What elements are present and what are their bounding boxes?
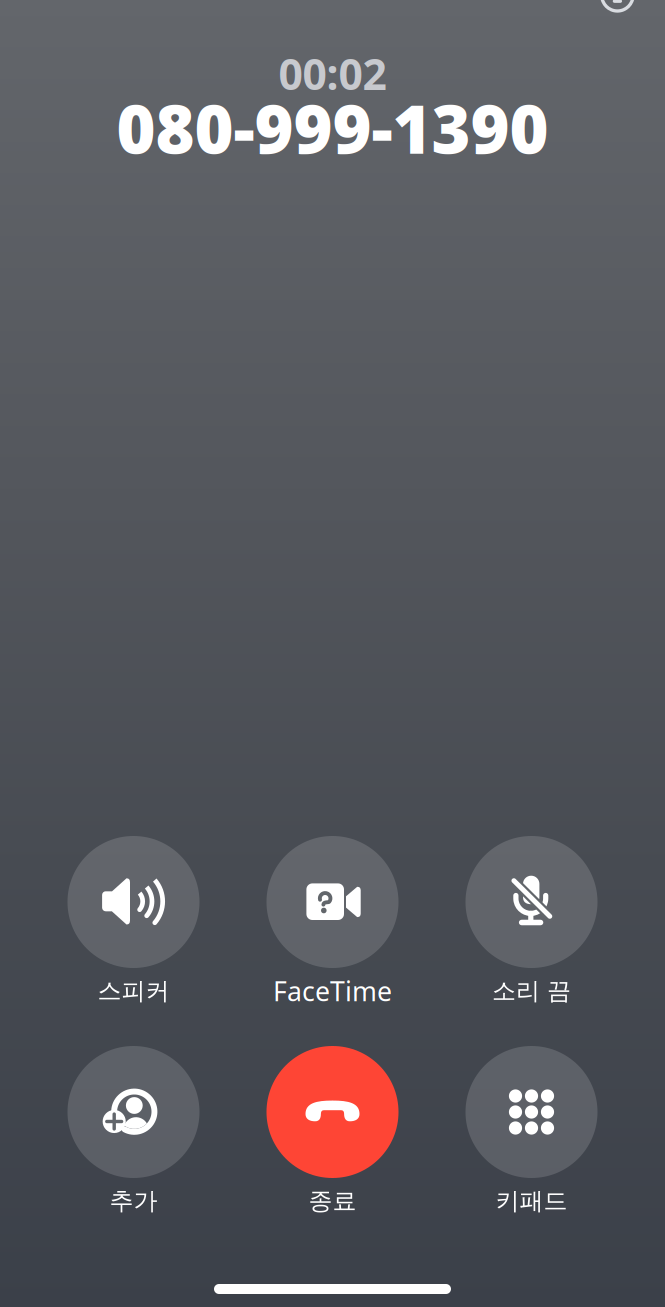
button[interactable]: 키패드 bbox=[465, 1046, 597, 1216]
staticText: 00:02 bbox=[278, 45, 386, 102]
button[interactable]: Contact info bbox=[600, 0, 634, 12]
button[interactable]: 스피커 bbox=[67, 836, 199, 1006]
staticText: 080-999-1390 bbox=[116, 84, 548, 172]
button[interactable]: FaceTime bbox=[266, 836, 398, 1006]
button[interactable]: 소리 끔 bbox=[465, 836, 597, 1006]
staticText: 추가 bbox=[109, 1186, 157, 1216]
button[interactable]: 종료 bbox=[266, 1046, 398, 1216]
staticText: 스피커 bbox=[97, 976, 169, 1006]
staticText: 소리 끔 bbox=[492, 976, 571, 1006]
staticText: 종료 bbox=[308, 1186, 356, 1216]
staticText: FaceTime bbox=[273, 973, 392, 1009]
button[interactable]: 추가 bbox=[67, 1046, 199, 1216]
staticText: 키패드 bbox=[495, 1186, 567, 1216]
